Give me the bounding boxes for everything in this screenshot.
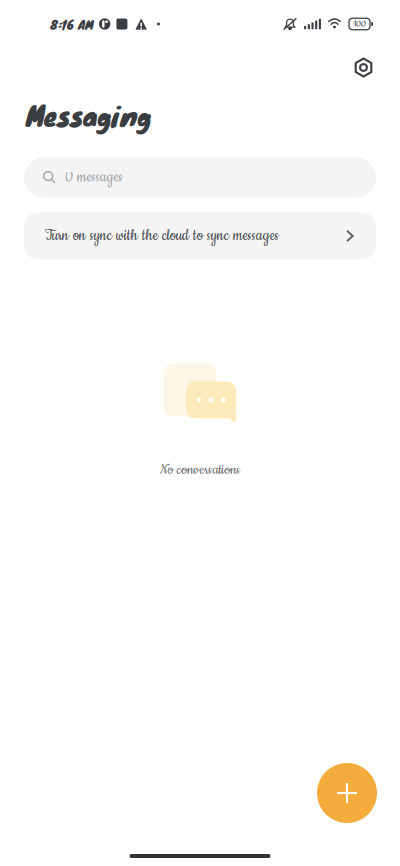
staticText: 100 [353, 18, 366, 30]
staticText: 0 messages [65, 168, 123, 187]
staticText: Messaging [26, 94, 151, 135]
staticText: 8:16 AM [50, 14, 93, 34]
button[interactable]: 0 messages [24, 157, 376, 197]
button[interactable]: Settings [345, 49, 382, 86]
staticText: Turn on sync with the cloud to sync mess… [45, 226, 279, 246]
staticText: No conversations [159, 460, 240, 479]
button[interactable]: New message [317, 763, 377, 823]
button[interactable]: Turn on sync with the cloud to sync mess… [24, 212, 376, 259]
